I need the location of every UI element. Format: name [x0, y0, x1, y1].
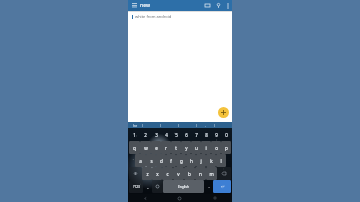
- staticText: 8: [205, 132, 208, 138]
- button[interactable]: z: [142, 167, 152, 180]
- button[interactable]: e: [151, 141, 161, 154]
- button[interactable]: Backspace: [217, 167, 231, 180]
- button[interactable]: g: [176, 154, 186, 167]
- button[interactable]: Back: [128, 194, 162, 202]
- button[interactable]: p: [221, 141, 231, 154]
- button[interactable]: Shift: [129, 167, 142, 180]
- button[interactable]: 1: [129, 129, 140, 141]
- button[interactable]: 9: [211, 129, 221, 141]
- button[interactable]: white from android: [132, 14, 232, 19]
- staticText: ?123: [133, 185, 140, 189]
- button[interactable]: r: [161, 141, 171, 154]
- button[interactable]: 5: [171, 129, 181, 141]
- button[interactable]: English: [163, 180, 204, 193]
- staticText: c: [166, 171, 169, 177]
- button[interactable]: Emoji: [152, 180, 163, 193]
- staticText: j: [200, 158, 202, 164]
- staticText: s: [150, 158, 153, 164]
- staticText: y: [185, 145, 188, 151]
- button[interactable]: t: [171, 141, 181, 154]
- staticText: o: [215, 145, 218, 151]
- button[interactable]: Home: [162, 194, 197, 202]
- staticText: a: [139, 158, 142, 164]
- button[interactable]: o: [211, 141, 221, 154]
- button[interactable]: ,: [143, 180, 152, 193]
- button[interactable]: 3: [151, 129, 161, 141]
- button[interactable]: y: [181, 141, 191, 154]
- button[interactable]: 0: [221, 129, 231, 141]
- button[interactable]: u: [191, 141, 201, 154]
- button[interactable]: More options: [223, 0, 232, 11]
- staticText: 1: [133, 132, 136, 138]
- button[interactable]: 4: [161, 129, 171, 141]
- staticText: x: [156, 171, 159, 177]
- button[interactable]: Recent apps: [197, 194, 232, 202]
- staticText: 0: [225, 132, 228, 138]
- button[interactable]: j: [196, 154, 206, 167]
- button[interactable]: Pin: [213, 0, 223, 11]
- button[interactable]: x: [152, 167, 162, 180]
- button[interactable]: 8: [201, 129, 211, 141]
- staticText: t: [175, 145, 177, 151]
- staticText: 4: [165, 132, 168, 138]
- staticText: ,: [147, 184, 149, 189]
- button[interactable]: f: [166, 154, 176, 167]
- staticText: l: [220, 158, 222, 164]
- button[interactable]: i: [201, 141, 211, 154]
- button[interactable]: .: [197, 122, 214, 128]
- staticText: .: [208, 184, 210, 189]
- staticText: k: [210, 158, 213, 164]
- button[interactable]: q: [129, 141, 140, 154]
- staticText: he: [133, 123, 138, 128]
- staticText: g: [180, 158, 183, 164]
- button[interactable]: d: [156, 154, 166, 167]
- staticText: p: [225, 145, 228, 151]
- staticText: h: [190, 158, 193, 164]
- button[interactable]: 6: [181, 129, 191, 141]
- staticText: 2: [144, 132, 147, 138]
- button[interactable]: m: [206, 167, 217, 180]
- button[interactable]: v: [173, 167, 184, 180]
- button[interactable]: 7: [191, 129, 201, 141]
- staticText: w: [144, 145, 148, 151]
- staticText: z: [146, 171, 149, 177]
- staticText: e: [155, 145, 158, 151]
- button[interactable]: s: [146, 154, 156, 167]
- button[interactable]: new: [140, 0, 202, 11]
- button[interactable]: b: [184, 167, 195, 180]
- staticText: 7: [195, 132, 198, 138]
- staticText: q: [133, 145, 136, 151]
- staticText: b: [188, 171, 191, 177]
- staticText: 9: [215, 132, 218, 138]
- button[interactable]: .: [204, 180, 213, 193]
- button[interactable]: l: [216, 154, 226, 167]
- button[interactable]: k: [206, 154, 216, 167]
- button[interactable]: he: [128, 122, 142, 128]
- button[interactable]: c: [162, 167, 173, 180]
- staticText: .: [205, 123, 206, 128]
- staticText: English: [178, 185, 189, 189]
- staticText: r: [165, 145, 167, 151]
- button[interactable]: Navigate up: [128, 0, 140, 11]
- staticText: d: [160, 158, 163, 164]
- staticText: m: [209, 171, 214, 177]
- button[interactable]: h: [186, 154, 196, 167]
- button[interactable]: a: [135, 154, 146, 167]
- staticText: white from android: [135, 14, 172, 19]
- staticText: i: [205, 145, 207, 151]
- staticText: 5: [175, 132, 178, 138]
- button[interactable]: ?123: [129, 180, 143, 193]
- button[interactable]: Enter: [213, 180, 231, 193]
- staticText: n: [199, 171, 202, 177]
- staticText: new: [140, 2, 150, 9]
- button[interactable]: Add note: [218, 107, 229, 118]
- staticText: f: [170, 158, 172, 164]
- button[interactable]: n: [195, 167, 206, 180]
- button[interactable]: w: [140, 141, 151, 154]
- button[interactable]: 2: [140, 129, 151, 141]
- button[interactable]: Layout: [202, 0, 213, 11]
